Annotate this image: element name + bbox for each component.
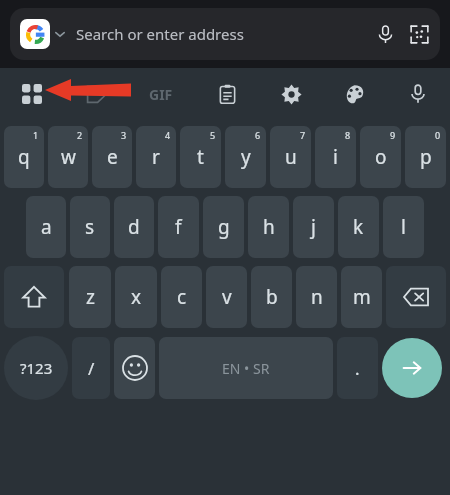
staticText: t <box>197 144 204 170</box>
button[interactable]: Voice input <box>400 76 436 112</box>
staticText: o <box>375 144 387 170</box>
button[interactable]: c <box>161 266 202 328</box>
button[interactable]: q <box>4 126 44 188</box>
button[interactable]: o <box>360 126 401 188</box>
staticText: / <box>88 357 95 380</box>
staticText: u <box>285 144 297 170</box>
button[interactable]: Themes <box>336 76 372 112</box>
staticText: 2 <box>77 129 83 141</box>
staticText: i <box>333 144 338 170</box>
button[interactable]: Google Lens <box>402 17 436 51</box>
staticText: n <box>311 284 323 310</box>
button[interactable]: i <box>315 126 356 188</box>
button[interactable]: g <box>203 196 244 258</box>
staticText: . <box>355 357 360 380</box>
staticText: b <box>266 284 278 310</box>
button[interactable]: j <box>293 196 334 258</box>
staticText: Search or enter address <box>76 24 244 44</box>
button[interactable]: u <box>270 126 311 188</box>
button[interactable]: Stickers <box>78 76 114 112</box>
button[interactable]: e <box>92 126 132 188</box>
staticText: w <box>61 144 76 170</box>
staticText: c <box>177 284 187 310</box>
button[interactable]: Settings <box>273 76 309 112</box>
button[interactable]: m <box>341 266 382 328</box>
staticText: l <box>401 214 406 240</box>
button[interactable]: k <box>338 196 379 258</box>
staticText: z <box>86 284 95 310</box>
button[interactable]: f <box>158 196 199 258</box>
staticText: a <box>41 214 52 240</box>
button[interactable]: n <box>296 266 337 328</box>
staticText: m <box>353 284 371 310</box>
staticText: s <box>85 214 95 240</box>
button[interactable]: . <box>337 337 378 399</box>
staticText: q <box>18 144 30 170</box>
staticText: h <box>263 214 275 240</box>
button[interactable]: a <box>26 196 66 258</box>
button[interactable]: Clipboard <box>209 76 245 112</box>
button[interactable]: y <box>225 126 266 188</box>
staticText: g <box>218 214 230 240</box>
button[interactable]: / <box>72 337 110 399</box>
staticText: f <box>175 214 182 240</box>
staticText: 7 <box>300 129 306 141</box>
button[interactable]: Enter <box>382 338 442 398</box>
staticText: e <box>107 144 118 170</box>
staticText: 0 <box>435 129 441 141</box>
button[interactable]: w <box>48 126 88 188</box>
staticText: 6 <box>255 129 261 141</box>
staticText: 5 <box>210 129 216 141</box>
staticText: y <box>241 144 251 170</box>
staticText: k <box>353 214 364 240</box>
button[interactable]: Emoji <box>114 337 155 399</box>
button[interactable]: r <box>136 126 176 188</box>
button[interactable]: b <box>251 266 292 328</box>
staticText: v <box>222 284 232 310</box>
button[interactable]: GIF <box>141 74 181 114</box>
button[interactable]: t <box>180 126 221 188</box>
button[interactable]: h <box>248 196 289 258</box>
button[interactable]: x <box>115 266 157 328</box>
staticText: 3 <box>121 129 127 141</box>
staticText: 9 <box>390 129 396 141</box>
button[interactable]: p <box>405 126 446 188</box>
staticText: 1 <box>33 129 39 141</box>
staticText: p <box>420 144 432 170</box>
button[interactable]: Shift <box>4 266 64 328</box>
button[interactable]: Search or enter address <box>10 8 440 60</box>
button[interactable]: Backspace <box>386 266 446 328</box>
button[interactable]: Voice search <box>368 17 402 51</box>
staticText: d <box>128 214 140 240</box>
staticText: GIF <box>149 85 173 104</box>
staticText: 4 <box>165 129 171 141</box>
button[interactable]: EN • SR <box>159 337 333 399</box>
button[interactable]: v <box>206 266 247 328</box>
staticText: ?123 <box>20 358 53 378</box>
button[interactable]: s <box>70 196 110 258</box>
staticText: j <box>311 214 316 240</box>
button[interactable]: z <box>69 266 111 328</box>
staticText: 8 <box>345 129 351 141</box>
button[interactable]: d <box>114 196 154 258</box>
button[interactable]: ?123 <box>4 336 68 400</box>
button[interactable]: l <box>383 196 424 258</box>
button[interactable]: Apps <box>14 76 50 112</box>
staticText: EN • SR <box>222 359 270 378</box>
staticText: r <box>152 144 160 170</box>
staticText: x <box>131 284 142 310</box>
